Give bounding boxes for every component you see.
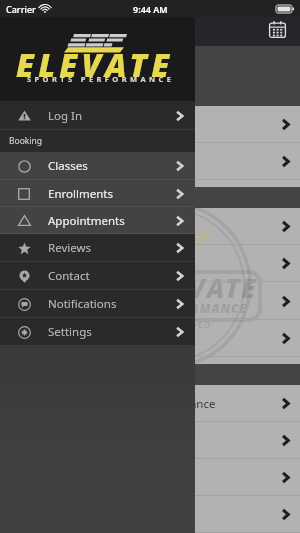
button[interactable]: Appointments: [0, 207, 195, 234]
button[interactable]: Reviews: [0, 234, 195, 262]
button[interactable]: Settings: [0, 318, 195, 346]
staticText: SPORTS PERFORMANCE: [27, 74, 175, 84]
staticText: Appointments: [48, 213, 125, 229]
button[interactable]: Elevate Sports Performance: [0, 385, 300, 422]
staticText: ELEVATE: [16, 43, 174, 87]
staticText: Notifications: [48, 296, 117, 312]
staticText: Carrier: [6, 3, 36, 15]
staticText: Booking: [9, 135, 43, 147]
staticText: Classes: [48, 158, 88, 174]
button[interactable]: [0, 208, 300, 245]
staticText: Settings: [48, 324, 92, 340]
button[interactable]: [0, 320, 300, 357]
button[interactable]: [0, 422, 300, 459]
staticText: 9:44 AM: [133, 3, 168, 15]
button[interactable]: [0, 282, 300, 320]
staticText: Enrollments: [48, 186, 113, 202]
button[interactable]: Classes: [0, 152, 195, 180]
button[interactable]: Contact: [0, 262, 195, 290]
button[interactable]: Calendar: [265, 17, 289, 41]
button[interactable]: [0, 245, 300, 282]
staticText: Reviews: [48, 240, 92, 256]
button[interactable]: [0, 143, 300, 180]
button[interactable]: Enrollments: [0, 180, 195, 207]
button[interactable]: [0, 106, 300, 143]
button[interactable]: [0, 459, 300, 496]
staticText: FOUNDED: [160, 318, 212, 330]
staticText: Log In: [48, 108, 83, 124]
staticText: Elevate Sports Performance: [66, 396, 216, 412]
staticText: ELEVATE: [140, 270, 258, 305]
staticText: Contact: [48, 268, 90, 284]
button[interactable]: Notifications: [0, 290, 195, 318]
button[interactable]: Log In: [0, 101, 195, 130]
button[interactable]: [0, 496, 300, 533]
staticText: PERFORMANCE: [148, 300, 248, 316]
